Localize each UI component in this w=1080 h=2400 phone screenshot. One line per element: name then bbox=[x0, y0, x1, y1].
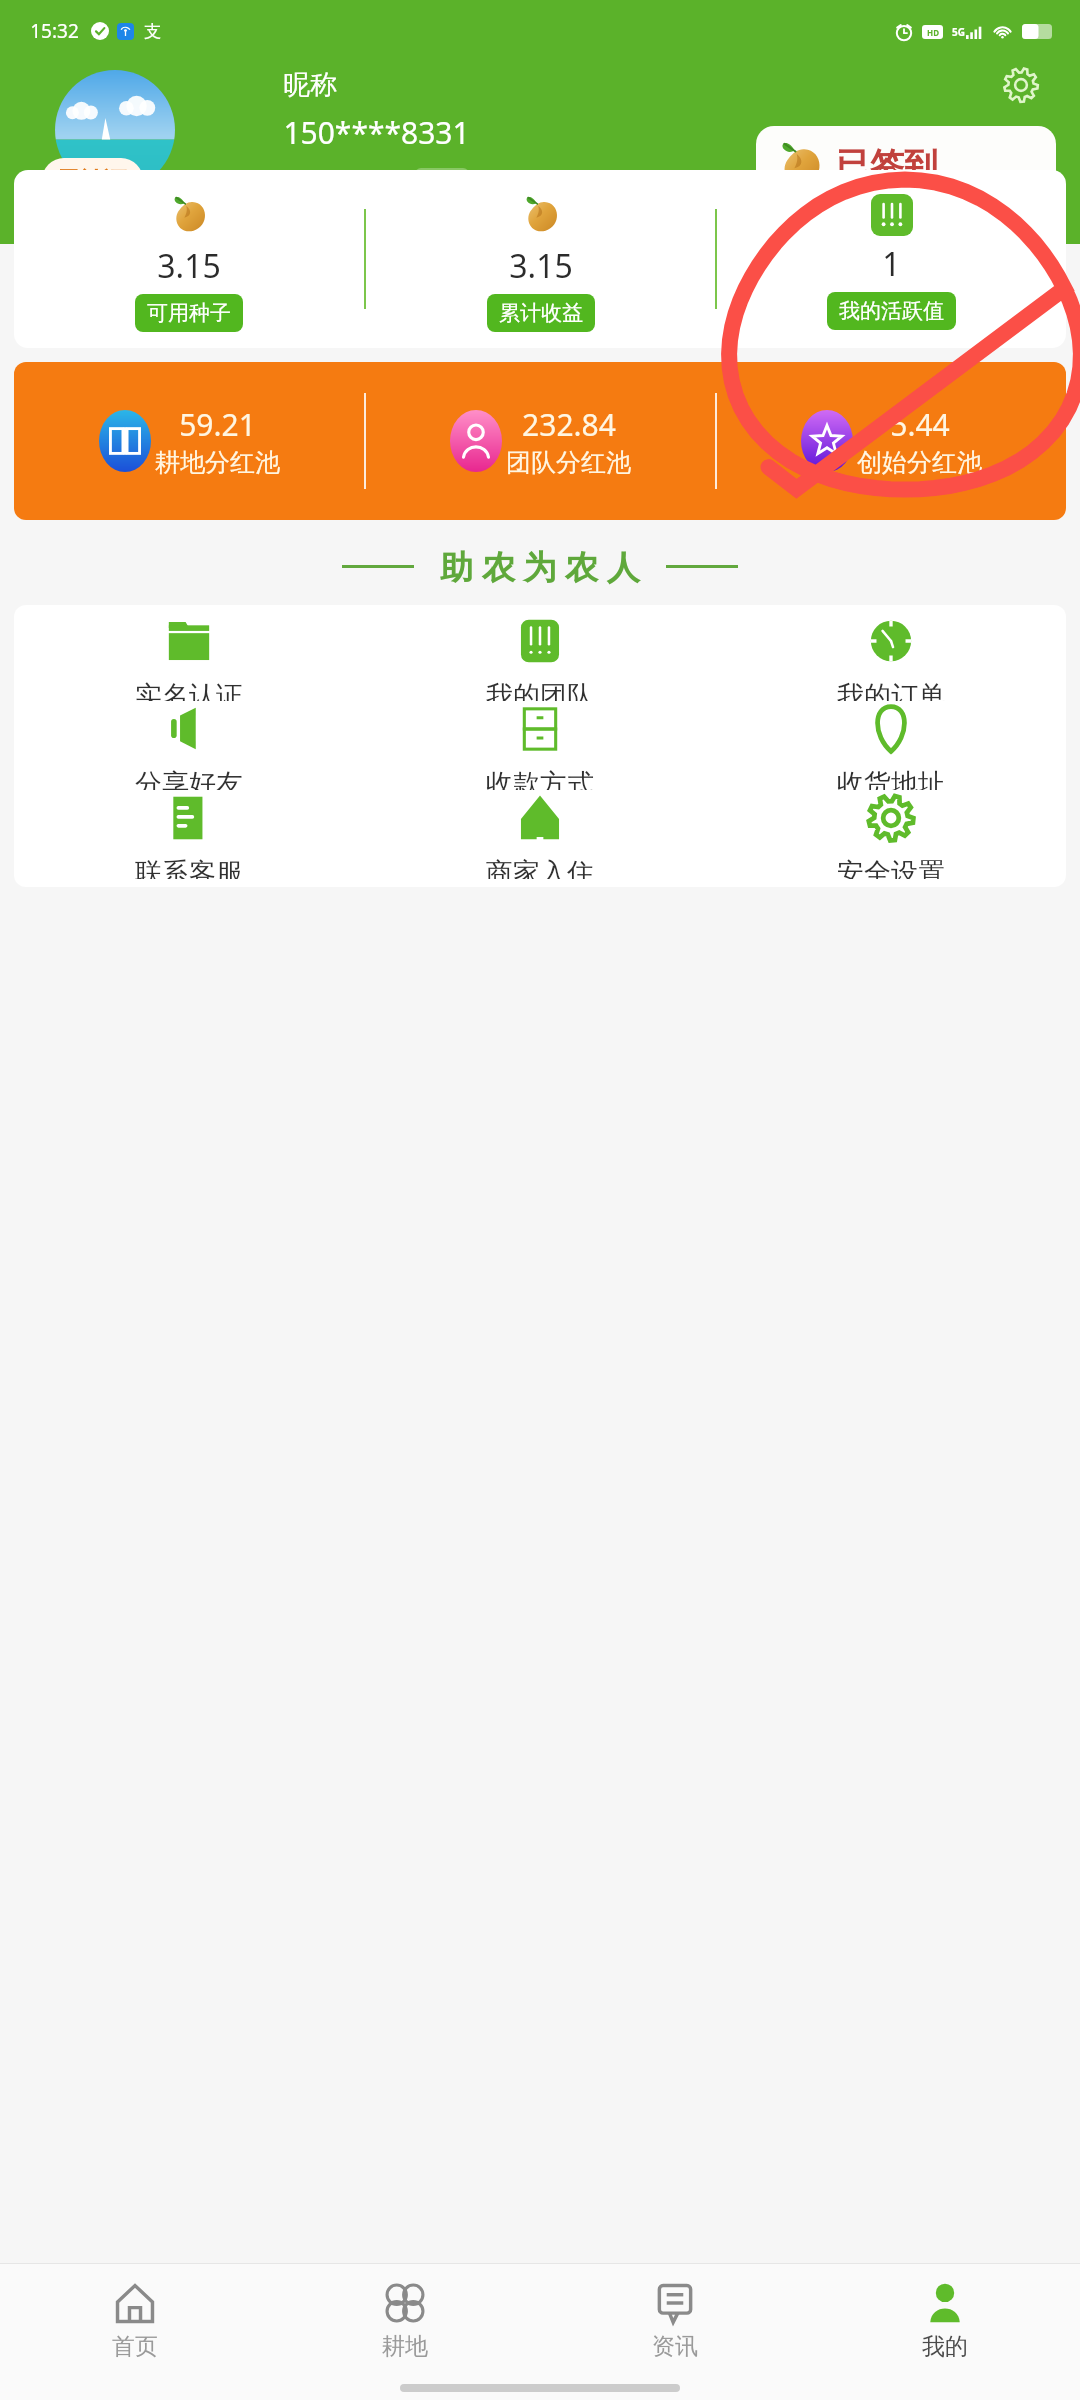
button[interactable]: 我的订单 bbox=[715, 613, 1066, 701]
staticText: 5G bbox=[952, 25, 965, 39]
staticText: 3.15 bbox=[509, 244, 573, 288]
button[interactable]: 59.21 bbox=[14, 362, 364, 520]
button[interactable]: 首页 bbox=[0, 2264, 270, 2376]
staticText: 商家入住 bbox=[486, 856, 594, 879]
staticText: 助 农 为 农 人 bbox=[440, 544, 640, 589]
button[interactable]: 实名认证 bbox=[14, 613, 364, 701]
staticText: 首页 bbox=[112, 2332, 158, 2361]
staticText: 收款方式 bbox=[486, 767, 594, 790]
staticText: 耕地 bbox=[382, 2332, 428, 2361]
staticText: HD bbox=[927, 27, 939, 38]
staticText: 支 bbox=[144, 21, 161, 42]
staticText: 实名认证 bbox=[135, 679, 243, 701]
staticText: 59.21 bbox=[179, 404, 256, 445]
button[interactable]: Settings bbox=[998, 62, 1044, 108]
staticText: 15:32 bbox=[30, 18, 79, 44]
staticText: 可用种子 bbox=[147, 300, 231, 326]
staticText: 5.44 bbox=[890, 404, 950, 445]
staticText: 已认证 bbox=[58, 166, 127, 195]
staticText: 3.15 bbox=[157, 244, 221, 288]
button[interactable]: 232.84 bbox=[366, 362, 715, 520]
button[interactable]: 已签到 bbox=[756, 126, 1056, 204]
staticText: 我的活跃值 bbox=[839, 298, 944, 324]
button[interactable]: 收货地址 bbox=[715, 701, 1066, 790]
button[interactable]: 我的 bbox=[810, 2264, 1080, 2376]
staticText: 232.84 bbox=[522, 404, 616, 445]
staticText: 我的团队 bbox=[486, 679, 594, 701]
staticText: 已签到 bbox=[836, 144, 938, 187]
staticText: af384831 bbox=[283, 163, 405, 201]
button[interactable]: 商家入住 bbox=[364, 790, 715, 879]
staticText: 耕地分红池 bbox=[155, 447, 280, 478]
staticText: 收货地址 bbox=[837, 767, 945, 790]
staticText: 我的 bbox=[922, 2332, 968, 2361]
button[interactable]: 安全设置 bbox=[715, 790, 1066, 879]
button[interactable]: 我的团队 bbox=[364, 613, 715, 701]
staticText: 团队分红池 bbox=[506, 447, 631, 478]
staticText: 150****8331 bbox=[283, 112, 470, 153]
staticText: 累计收益 bbox=[499, 300, 583, 326]
staticText: 联系客服 bbox=[135, 856, 243, 879]
button[interactable]: 联系客服 bbox=[14, 790, 364, 879]
staticText: 1 bbox=[882, 242, 901, 286]
button[interactable]: 复制 bbox=[415, 168, 469, 197]
button[interactable] bbox=[55, 70, 175, 190]
staticText: 创始分红池 bbox=[857, 447, 982, 478]
button[interactable]: 3.15 bbox=[366, 170, 715, 348]
staticText: 安全设置 bbox=[837, 856, 945, 879]
staticText: 资讯 bbox=[652, 2332, 698, 2361]
button[interactable]: 收款方式 bbox=[364, 701, 715, 790]
button[interactable]: 资讯 bbox=[540, 2264, 810, 2376]
staticText: 分享好友 bbox=[135, 767, 243, 790]
staticText: 我的订单 bbox=[837, 679, 945, 701]
button[interactable]: 分享好友 bbox=[14, 701, 364, 790]
button[interactable]: 5.44 bbox=[717, 362, 1066, 520]
button[interactable]: 耕地 bbox=[270, 2264, 540, 2376]
button[interactable]: 3.15 bbox=[14, 170, 364, 348]
staticText: 昵称 bbox=[283, 68, 337, 102]
button[interactable]: 1 bbox=[717, 170, 1066, 348]
